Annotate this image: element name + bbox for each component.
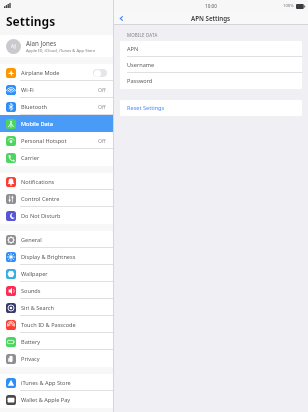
staticText: Apple ID, iCloud, iTunes & App Store — [26, 48, 96, 54]
button[interactable]: Carrier — [0, 149, 113, 166]
button[interactable]: Control Centre — [0, 190, 113, 207]
staticText: Off — [98, 137, 106, 144]
button[interactable]: Username — [120, 57, 302, 73]
button[interactable]: Display & Brightness — [0, 248, 113, 265]
button[interactable]: Wallpaper — [0, 265, 113, 282]
staticText: Airplane Mode — [21, 69, 60, 77]
staticText: Touch ID & Passcode — [21, 321, 76, 329]
button[interactable]: Privacy — [0, 350, 113, 367]
staticText: 10:00 — [205, 3, 217, 9]
staticText: Bluetooth — [21, 103, 47, 111]
staticText: 100% — [283, 3, 294, 9]
staticText: Control Centre — [21, 195, 60, 203]
button[interactable]: Siri & Search — [0, 299, 113, 316]
staticText: Battery — [21, 338, 41, 346]
staticText: Settings — [6, 13, 56, 29]
staticText: Privacy — [21, 355, 40, 363]
staticText: Username — [127, 61, 155, 69]
button[interactable]: Mobile Data — [0, 115, 113, 132]
button[interactable]: Password — [120, 73, 302, 89]
button[interactable]: Personal Hotspot — [0, 132, 113, 149]
button[interactable]: Sounds — [0, 282, 113, 299]
staticText: Do Not Disturb — [21, 212, 61, 220]
button[interactable]: Battery — [0, 333, 113, 350]
staticText: iTunes & App Store — [21, 379, 71, 387]
button[interactable]: Notifications — [0, 173, 113, 190]
staticText: Off — [98, 86, 106, 93]
staticText: Siri & Search — [21, 304, 54, 312]
button[interactable]: Back — [114, 11, 128, 25]
button[interactable]: AJ — [0, 35, 113, 57]
staticText: APN Settings — [191, 14, 231, 22]
button[interactable]: Airplane Mode toggle — [93, 69, 107, 77]
staticText: Sounds — [21, 287, 41, 295]
button[interactable]: Touch ID & Passcode — [0, 316, 113, 333]
button[interactable]: Airplane Mode — [0, 64, 113, 81]
staticText: Wallet & Apple Pay — [21, 396, 71, 404]
staticText: Wi-Fi — [21, 86, 34, 94]
staticText: Wallpaper — [21, 270, 48, 278]
staticText: Mobile Data — [21, 120, 53, 128]
staticText: Display & Brightness — [21, 253, 76, 261]
staticText: Reset Settings — [127, 104, 165, 112]
button[interactable]: Bluetooth — [0, 98, 113, 115]
staticText: APN — [127, 45, 139, 53]
staticText: Personal Hotspot — [21, 137, 67, 145]
button[interactable]: Reset Settings — [120, 100, 302, 116]
staticText: AJ — [11, 43, 16, 50]
staticText: Carrier — [21, 154, 40, 162]
staticText: Off — [98, 103, 106, 110]
staticText: Password — [127, 77, 153, 85]
button[interactable]: Do Not Disturb — [0, 207, 113, 224]
button[interactable]: Wi-Fi — [0, 81, 113, 98]
button[interactable]: Wallet & Apple Pay — [0, 391, 113, 408]
button[interactable]: General — [0, 231, 113, 248]
staticText: General — [21, 236, 42, 244]
staticText: Notifications — [21, 178, 55, 186]
staticText: Alan Jones — [26, 39, 57, 47]
button[interactable]: iTunes & App Store — [0, 374, 113, 391]
button[interactable]: APN — [120, 41, 302, 57]
staticText: MOBILE DATA — [127, 32, 158, 38]
